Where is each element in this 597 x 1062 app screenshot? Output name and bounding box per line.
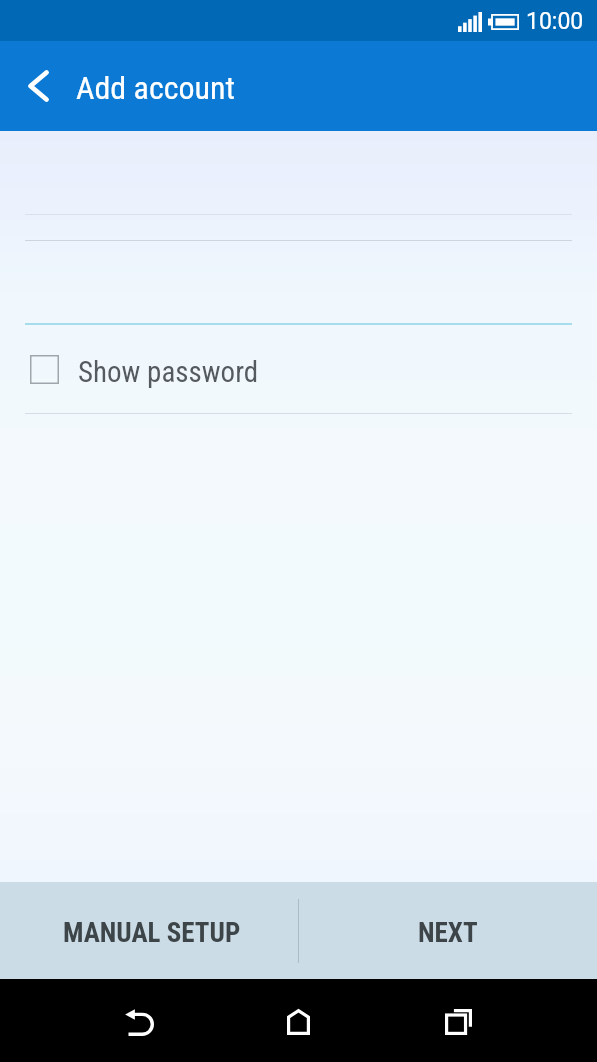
staticText: 10:00 [526,8,584,35]
button[interactable]: NEXT [299,882,597,979]
staticText: Add account [76,69,235,107]
button[interactable]: Navigate up [0,41,76,131]
button[interactable]: Back [59,979,219,1062]
button[interactable]: MANUAL SETUP [0,882,298,979]
staticText: NEXT [418,917,478,949]
staticText: MANUAL SETUP [63,917,241,949]
button[interactable]: Home [219,979,379,1062]
button[interactable]: Recent apps [379,979,539,1062]
button[interactable]: Show password [0,325,597,413]
staticText: Show password [78,355,259,389]
